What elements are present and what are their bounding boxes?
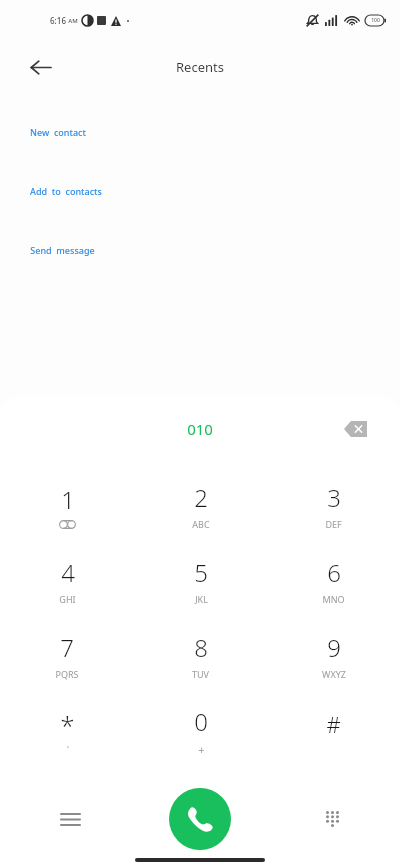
button[interactable]: 3 [267,468,400,543]
staticText: 1 [61,483,75,516]
staticText: 0 [194,705,208,738]
button[interactable]: # [267,693,400,768]
staticText: 6:16 [50,15,66,26]
staticText: PQRS [55,668,79,680]
button[interactable]: 9 [267,618,400,693]
staticText: 4 [61,556,75,589]
staticText: # [326,709,341,739]
staticText: 9 [327,631,341,664]
button[interactable]: Backspace [336,412,374,446]
staticText: + [198,742,205,757]
staticText: GHI [59,593,76,605]
staticText: Recents [176,58,224,76]
button[interactable]: 4 [0,543,134,618]
staticText: MNO [322,593,345,605]
button[interactable]: 2 [134,468,267,543]
button[interactable]: New contact [0,118,400,146]
button[interactable]: * [0,693,134,768]
staticText: ' [67,744,69,755]
button[interactable]: Back [18,46,62,88]
staticText: WXYZ [322,668,346,680]
button[interactable]: 6 [267,543,400,618]
staticText: 5 [194,556,208,589]
staticText: 3 [327,481,341,514]
staticText: 2 [194,481,208,514]
button[interactable]: Call [169,788,231,850]
button[interactable]: Dialpad [310,797,354,841]
staticText: AM [68,17,78,25]
button[interactable]: 8 [134,618,267,693]
staticText: * [60,707,75,742]
staticText: JKL [195,593,208,605]
button[interactable]: Add to contacts [0,177,400,205]
staticText: 7 [60,631,74,664]
staticText: 010 [187,419,213,439]
button[interactable]: 0 [134,693,267,768]
staticText: 8 [194,631,208,664]
button[interactable]: 1 [0,468,134,543]
staticText: Send message [30,244,95,256]
button[interactable]: 5 [134,543,267,618]
staticText: ABC [192,518,210,530]
button[interactable]: More options [48,797,92,841]
staticText: Add to contacts [30,185,102,197]
staticText: 100 [371,17,380,24]
button[interactable]: 7 [0,618,134,693]
button[interactable]: Send message [0,236,400,264]
staticText: New contact [30,126,86,138]
staticText: TUV [192,668,209,680]
staticText: DEF [325,518,342,530]
staticText: 6 [327,556,341,589]
